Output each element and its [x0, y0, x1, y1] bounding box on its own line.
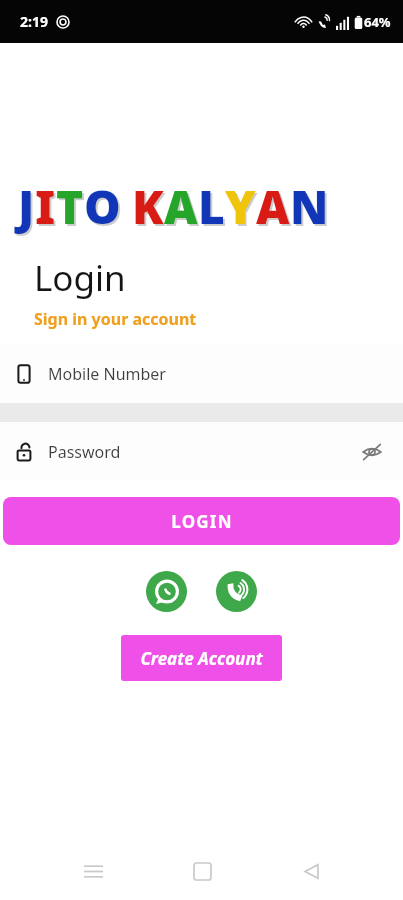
staticText: Mobile Number	[48, 363, 389, 385]
staticText: J	[18, 175, 35, 238]
button[interactable]: Create Account	[121, 635, 282, 681]
button[interactable]: Home	[182, 851, 222, 891]
staticText: K	[134, 177, 166, 240]
staticText: O	[86, 177, 123, 240]
staticText: Y	[227, 177, 258, 240]
staticText: L	[200, 177, 227, 240]
button[interactable]: Mobile Number	[0, 344, 403, 403]
staticText: T	[58, 177, 86, 240]
staticText: Y	[225, 175, 256, 238]
button[interactable]: Call	[216, 571, 257, 612]
staticText: A	[164, 175, 198, 238]
staticText: Password	[48, 441, 355, 463]
staticText: A	[166, 177, 200, 240]
button[interactable]: WhatsApp	[146, 571, 187, 612]
staticText: Sign in your account	[34, 308, 197, 330]
staticText: 64%	[364, 13, 391, 31]
staticText: Login	[34, 254, 126, 302]
staticText: Create Account	[140, 647, 263, 670]
staticText: L	[198, 175, 225, 238]
staticText: A	[256, 175, 290, 238]
staticText: J	[20, 177, 37, 240]
staticText: 2:19	[20, 12, 48, 31]
staticText: A	[258, 177, 292, 240]
staticText: I	[35, 175, 56, 238]
staticText: N	[290, 175, 329, 238]
button[interactable]: Show password	[355, 435, 389, 469]
staticText: LOGIN	[171, 510, 233, 533]
staticText: K	[132, 175, 164, 238]
staticText: O	[84, 175, 121, 238]
button[interactable]: Password	[0, 422, 403, 481]
staticText: T	[56, 175, 84, 238]
button[interactable]: Recent apps	[73, 851, 113, 891]
button[interactable]: LOGIN	[3, 497, 400, 545]
button[interactable]: Back	[291, 851, 331, 891]
staticText: I	[37, 177, 58, 240]
staticText: N	[292, 177, 331, 240]
